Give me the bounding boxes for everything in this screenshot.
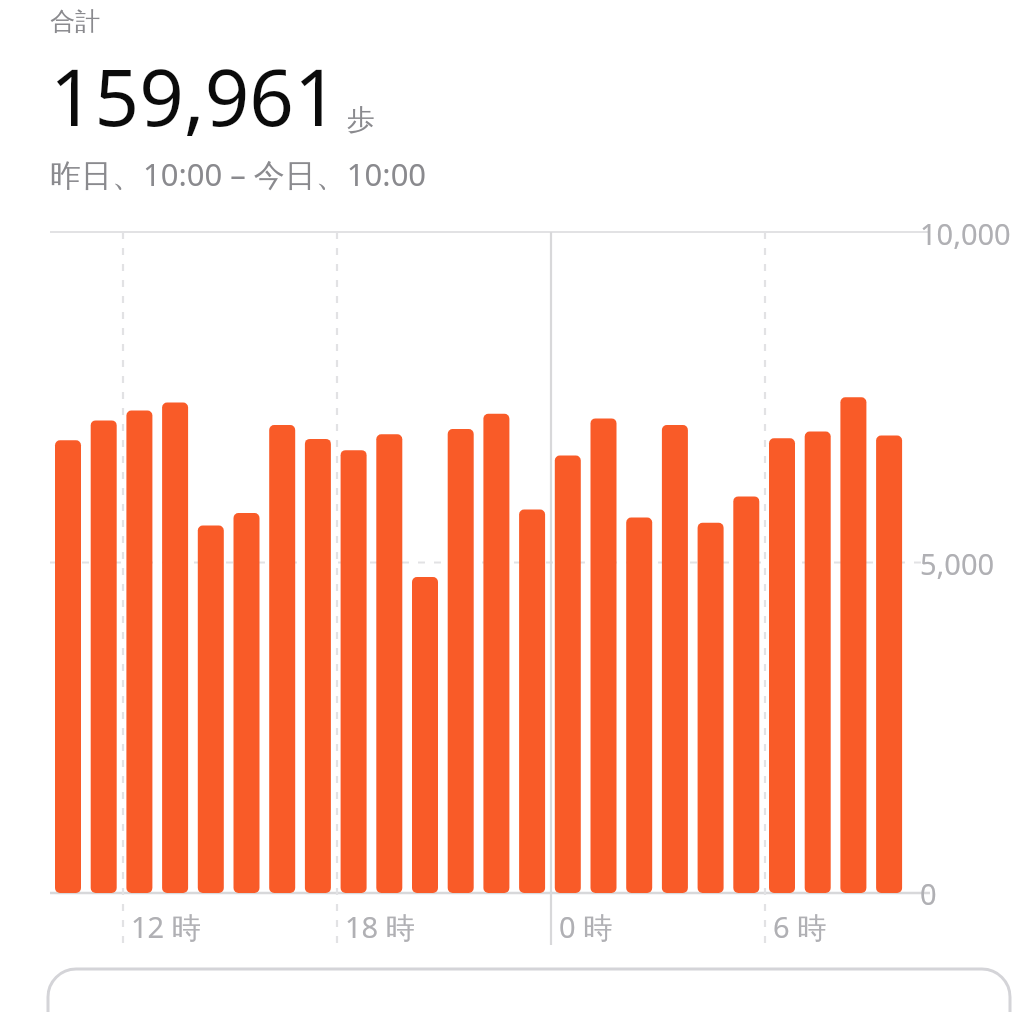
staticText: 6 時 (773, 907, 827, 947)
staticText: 18 時 (345, 907, 415, 947)
staticText: 5,000 (920, 544, 995, 583)
button[interactable] (0, 969, 1024, 1012)
staticText: 合計 (50, 6, 100, 37)
button[interactable]: 歩数グラフ (0, 217, 1024, 957)
staticText: 0 (920, 874, 937, 913)
staticText: 0 時 (559, 907, 613, 947)
staticText: 昨日、10:00 – 今日、10:00 (50, 153, 427, 195)
staticText: 12 時 (131, 907, 201, 947)
staticText: 10,000 (920, 214, 1011, 253)
staticText: 歩 (347, 102, 375, 137)
staticText: 159,961 (50, 43, 339, 149)
